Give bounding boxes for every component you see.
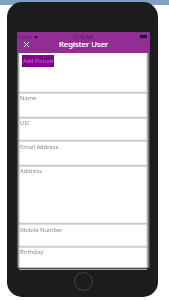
staticText: Address [20,167,42,175]
staticText: Email Address [20,143,59,151]
button[interactable]: Add Picture [22,55,54,67]
button[interactable]: Mobile Number [19,225,147,247]
button[interactable]: Email Address [19,142,147,165]
staticText: Register User [59,39,109,50]
staticText: UIC [20,119,30,127]
button[interactable]: Close [20,38,32,50]
staticText: Add Picture [23,57,54,65]
staticText: Birthday [20,248,44,256]
button[interactable]: UIC [19,118,147,140]
staticText: 11:42 AM [73,34,94,40]
staticText: Mobile Number [20,226,63,234]
staticText: Name [20,94,37,102]
staticText: Carrier [18,34,33,40]
button[interactable]: Address [19,166,147,223]
button[interactable]: Birthday [19,247,147,268]
button[interactable]: Home [74,272,93,291]
button[interactable]: Name [19,93,147,117]
